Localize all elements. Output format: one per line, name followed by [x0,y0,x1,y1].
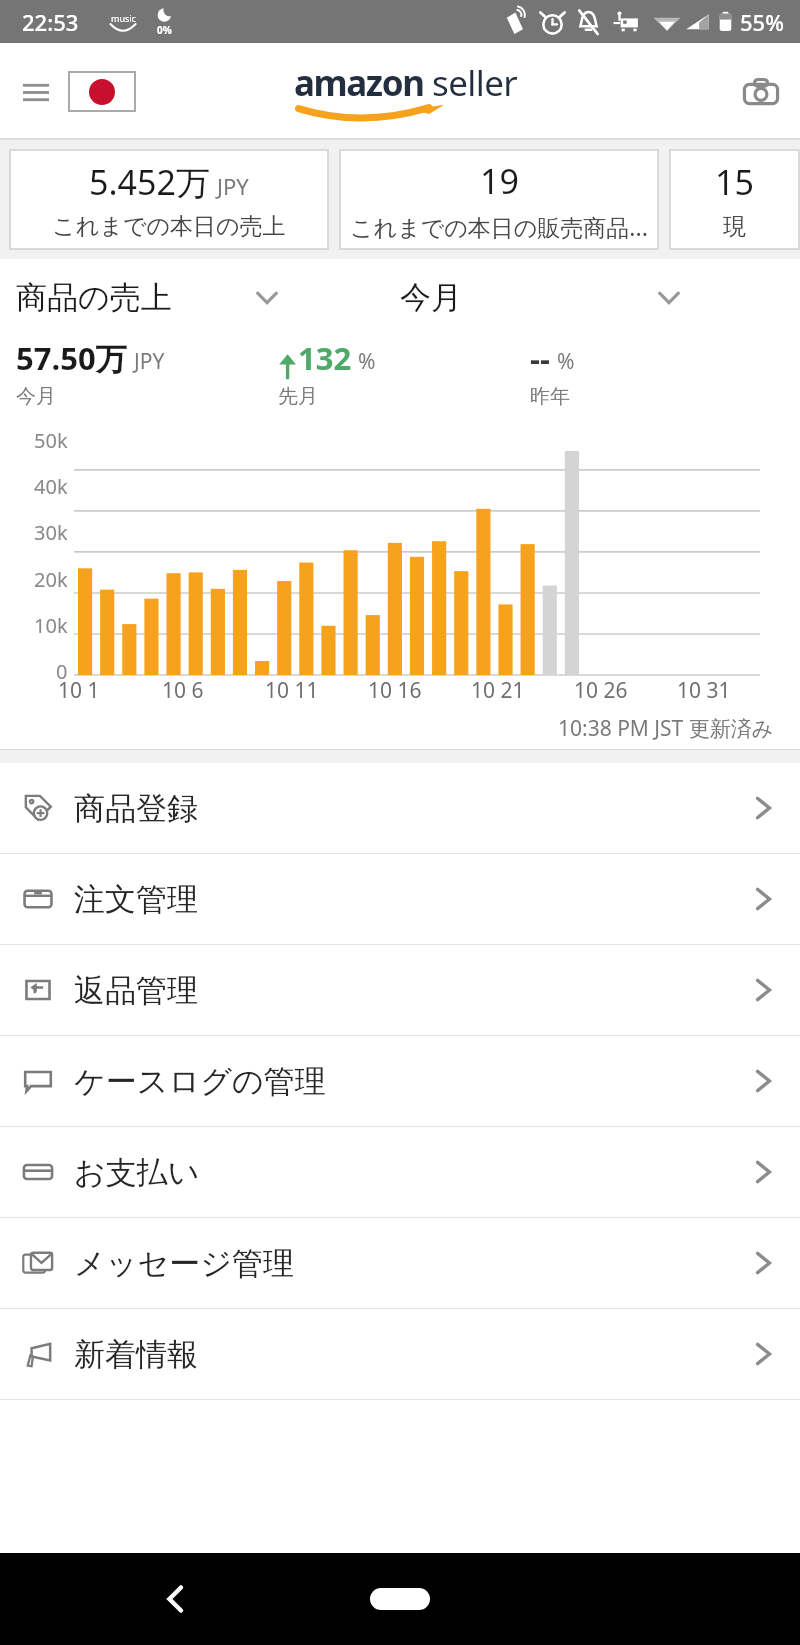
staticText: amazon [294,59,424,107]
staticText: 15 [715,159,754,205]
staticText: 商品登録 [74,789,198,828]
button[interactable]: お支払い [0,1127,800,1217]
button[interactable]: Home [362,1579,438,1619]
staticText: お支払い [74,1153,200,1192]
staticText: music [111,12,136,24]
staticText: seller [432,59,518,107]
staticText: JPY [217,171,249,201]
button[interactable]: メッセージ管理 [0,1218,800,1308]
staticText: 今月 [400,278,462,317]
staticText: 20k [34,566,68,593]
button[interactable]: 注文管理 [0,854,800,944]
staticText: 5.452万 [89,159,210,205]
button[interactable]: 新着情報 [0,1309,800,1399]
staticText: 50k [34,427,68,454]
staticText: 先月 [278,384,318,409]
staticText: 商品の売上 [16,278,172,317]
button[interactable]: Marketplace: Japan [68,71,136,112]
staticText: JPY [134,347,165,376]
button[interactable]: Open navigation menu [8,64,64,120]
staticText: 30k [34,519,68,546]
button[interactable]: 5.452万 [9,149,329,250]
button[interactable]: ケースログの管理 [0,1036,800,1126]
staticText: 10 11 [265,676,319,705]
button[interactable]: 15 [669,149,800,250]
staticText: 55% [740,7,784,37]
staticText: 10 1 [58,676,100,705]
button[interactable]: Scan product [732,63,790,121]
staticText: 10 26 [574,676,628,705]
staticText: 昨年 [530,384,570,409]
staticText: 10 16 [368,676,422,705]
staticText: % [358,347,376,376]
staticText: % [557,347,575,376]
staticText: 今月 [16,384,56,409]
staticText: 返品管理 [74,971,198,1010]
staticText: 10 21 [471,676,525,705]
button[interactable]: 今月 [300,267,800,327]
button[interactable]: 商品登録 [0,763,800,853]
staticText: 40k [34,473,68,500]
staticText: 10k [34,612,68,639]
staticText: 注文管理 [74,880,198,919]
staticText: 0% [157,23,172,37]
staticText: 19 [480,158,519,204]
staticText: これまでの本日の売上 [52,212,286,241]
staticText: ケースログの管理 [74,1062,326,1101]
staticText: 新着情報 [74,1335,198,1374]
button[interactable]: Back [140,1564,210,1634]
button[interactable]: 返品管理 [0,945,800,1035]
staticText: 57.50万 [16,337,127,379]
staticText: 10 31 [677,676,731,705]
staticText: 10 6 [162,676,204,705]
staticText: -- [530,337,550,379]
button[interactable]: 19 [339,149,659,250]
staticText: 22:53 [22,7,79,37]
staticText: 0 [56,658,68,685]
staticText: 132 [298,337,352,379]
staticText: メッセージ管理 [74,1244,294,1283]
button[interactable]: 商品の売上 [0,267,300,327]
staticText: 10:38 PM JST 更新済み [558,714,774,743]
staticText: 現 [723,212,746,241]
staticText: これまでの本日の販売商品... [350,211,648,242]
